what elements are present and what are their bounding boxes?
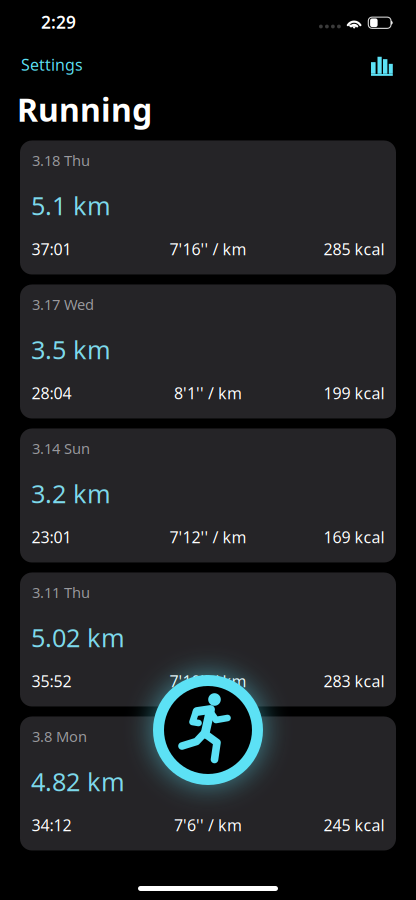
staticText: 3.5 km xyxy=(31,332,111,366)
button[interactable]: 3.11 Thu xyxy=(20,572,396,706)
staticText: 7'16'' / km xyxy=(169,238,246,260)
button[interactable]: Settings xyxy=(21,48,83,77)
staticText: 3.11 Thu xyxy=(32,582,90,602)
staticText: 34:12 xyxy=(31,814,71,836)
staticText: 37:01 xyxy=(31,238,71,260)
staticText: 5.1 km xyxy=(31,188,111,222)
staticText: 3.17 Wed xyxy=(32,294,94,314)
staticText: 169 kcal xyxy=(323,526,384,548)
staticText: 28:04 xyxy=(31,382,71,404)
staticText: 5.02 km xyxy=(31,620,125,654)
button[interactable]: 3.18 Thu xyxy=(20,140,396,274)
staticText: 7'6'' / km xyxy=(174,814,242,836)
staticText: 7'10'' / km xyxy=(169,670,246,692)
staticText: 8'1'' / km xyxy=(174,382,242,404)
button[interactable]: 3.17 Wed xyxy=(20,284,396,418)
staticText: 35:52 xyxy=(31,670,71,692)
staticText: 3.2 km xyxy=(31,476,111,510)
staticText: 4.82 km xyxy=(31,764,125,798)
staticText: 283 kcal xyxy=(323,670,384,692)
staticText: 7'12'' / km xyxy=(169,526,246,548)
staticText: 3.8 Mon xyxy=(32,726,87,746)
button[interactable]: 3.14 Sun xyxy=(20,428,396,562)
staticText: 3.18 Thu xyxy=(32,150,90,170)
button[interactable]: 3.8 Mon xyxy=(20,716,396,850)
button[interactable]: Statistics xyxy=(371,47,393,78)
staticText: 3.14 Sun xyxy=(32,438,90,458)
staticText: Running xyxy=(17,88,152,130)
button[interactable]: Start run xyxy=(138,660,278,800)
staticText: 2:29 xyxy=(41,10,76,33)
staticText: 285 kcal xyxy=(323,238,384,260)
staticText: Settings xyxy=(21,54,83,75)
staticText: 23:01 xyxy=(31,526,71,548)
staticText: 199 kcal xyxy=(323,382,384,404)
staticText: 245 kcal xyxy=(323,814,384,836)
